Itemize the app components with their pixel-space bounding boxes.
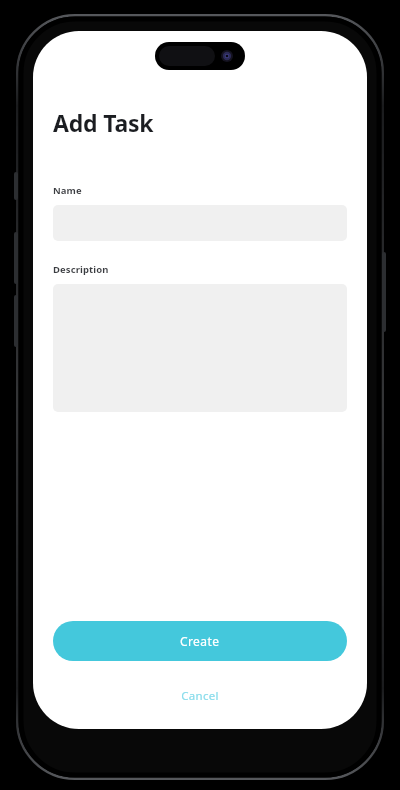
button[interactable]: Cancel xyxy=(53,685,347,707)
staticText: Create xyxy=(180,633,220,649)
staticText: Add Task xyxy=(53,107,154,138)
staticText: Description xyxy=(53,263,109,276)
staticText: Name xyxy=(53,184,82,197)
button[interactable]: Create xyxy=(53,621,347,661)
staticText: Cancel xyxy=(181,688,219,704)
